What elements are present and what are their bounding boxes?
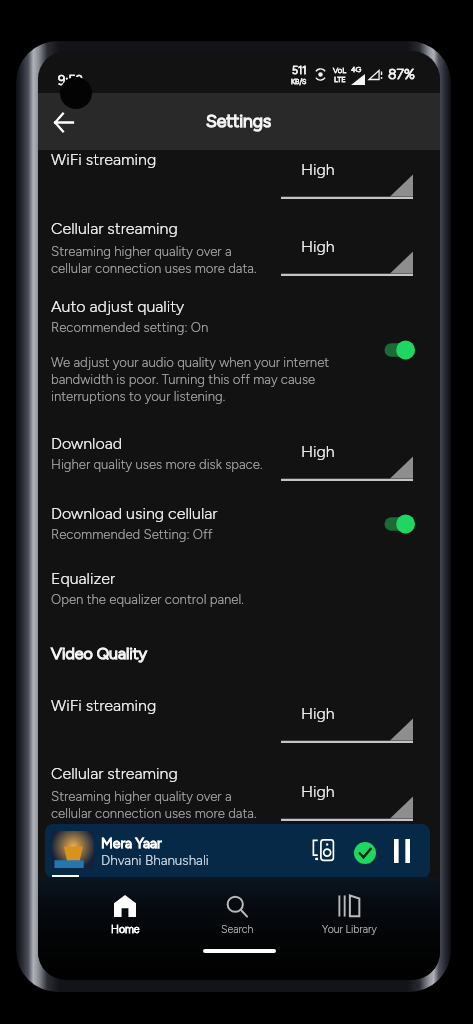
staticText: 511	[292, 64, 307, 77]
staticText: Recommended Setting: Off	[51, 526, 213, 542]
staticText: High	[301, 160, 335, 179]
staticText: Your Library	[322, 923, 377, 936]
staticText: Settings	[206, 110, 272, 131]
staticText: KB/S	[291, 77, 307, 85]
staticText: Video Quality	[51, 644, 147, 663]
button[interactable]: Cellular streaming	[51, 219, 184, 238]
staticText: 4G	[351, 65, 362, 74]
button[interactable]: WiFi streaming	[51, 696, 163, 715]
button[interactable]: High	[281, 238, 413, 276]
button[interactable]: Home	[69, 892, 181, 942]
staticText: Home	[111, 923, 140, 936]
button[interactable]: Download	[51, 434, 129, 453]
button[interactable]: Video Quality	[51, 644, 153, 663]
staticText: We adjust your audio quality when your i…	[51, 354, 330, 404]
staticText: High	[301, 237, 335, 256]
button[interactable]: Back	[41, 100, 85, 144]
staticText: 87%	[388, 66, 415, 83]
staticText: 87%	[388, 66, 415, 83]
button[interactable]: Toggle on	[384, 339, 415, 361]
button[interactable]: Toggle on	[384, 513, 415, 535]
staticText: Recommended setting: On	[51, 319, 209, 335]
button[interactable]: Connect to a device	[310, 838, 336, 864]
staticText: 4G	[351, 65, 362, 74]
staticText: Streaming higher quality over a cellular…	[51, 788, 257, 821]
staticText: Streaming higher quality over a cellular…	[51, 243, 257, 276]
button[interactable]: High	[281, 161, 413, 199]
button[interactable]: Search	[181, 892, 293, 942]
button[interactable]: Your Library	[293, 892, 405, 942]
button[interactable]: Download using cellular	[51, 504, 224, 523]
button[interactable]: High	[281, 443, 413, 481]
button[interactable]: Auto adjust quality	[51, 297, 191, 316]
button[interactable]: Cellular streaming	[51, 764, 184, 783]
button[interactable]: Mera Yaar	[45, 824, 430, 878]
staticText: Higher quality uses more disk space.	[51, 456, 263, 472]
staticText: Search	[221, 923, 254, 936]
staticText: Open the equalizer control panel.	[51, 591, 244, 607]
staticText: Mera Yaar	[101, 835, 162, 852]
staticText: Video Quality	[51, 644, 147, 663]
staticText: 511	[292, 64, 307, 77]
staticText: 9:52	[58, 73, 83, 89]
staticText: LTE	[334, 75, 346, 84]
staticText: High	[301, 442, 335, 461]
staticText: 9:52	[58, 73, 83, 89]
button[interactable]: High	[281, 705, 413, 743]
button[interactable]: High	[281, 783, 413, 821]
staticText: KB/S	[291, 77, 307, 85]
staticText: VoL	[333, 66, 346, 75]
staticText: Mera Yaar	[101, 835, 162, 852]
staticText: Settings	[206, 110, 272, 131]
button[interactable]: Pause	[394, 839, 410, 863]
staticText: High	[301, 782, 335, 801]
staticText: VoL	[333, 66, 346, 75]
staticText: LTE	[334, 75, 346, 84]
staticText: High	[301, 704, 335, 723]
button[interactable]: WiFi streaming	[51, 150, 163, 169]
staticText: Dhvani Bhanushali	[101, 852, 209, 868]
button[interactable]: Equalizer	[51, 569, 122, 588]
staticText: Home	[111, 923, 140, 936]
button[interactable]: Saved to Your Library	[354, 842, 376, 864]
